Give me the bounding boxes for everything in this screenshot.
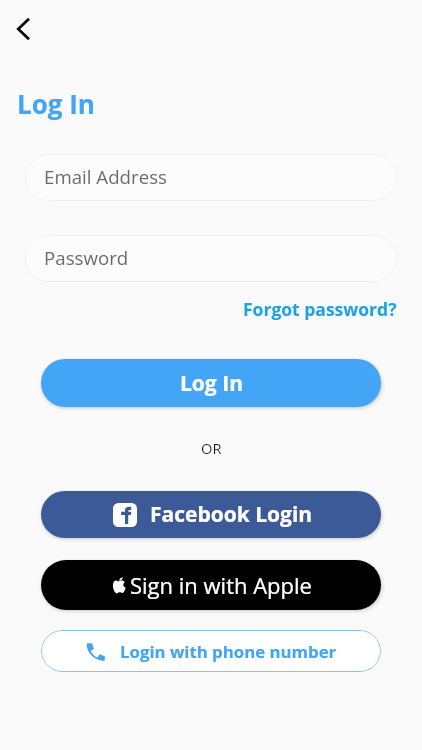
staticText: Password: [44, 245, 129, 270]
button[interactable]: Password: [25, 235, 397, 282]
staticText: Login with phone number: [120, 640, 337, 663]
staticText: Facebook Login: [150, 500, 313, 529]
button[interactable]: Email Address: [25, 154, 397, 201]
button[interactable]: Login with phone number: [41, 630, 381, 672]
button[interactable]: Forgot password?: [240, 294, 400, 324]
staticText: Forgot password?: [243, 297, 397, 321]
staticText: OR: [201, 438, 222, 458]
button[interactable]: Back: [4, 10, 41, 47]
button[interactable]: Facebook Login: [41, 491, 381, 538]
staticText: Log In: [180, 369, 243, 398]
button[interactable]: Sign in with Apple: [41, 560, 381, 610]
staticText: Log In: [17, 86, 95, 121]
button[interactable]: Log In: [41, 359, 381, 407]
staticText: Email Address: [44, 164, 167, 189]
staticText: Sign in with Apple: [130, 570, 312, 600]
